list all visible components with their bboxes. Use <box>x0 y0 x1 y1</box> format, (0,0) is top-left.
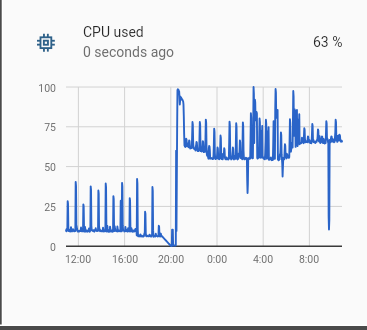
staticText: 20:00 <box>146 253 196 266</box>
staticText: 12:00 <box>53 253 103 266</box>
staticText: 25 <box>16 201 56 214</box>
staticText: 16:00 <box>100 253 150 266</box>
staticText: CPU used <box>83 24 144 40</box>
staticText: 63 % <box>313 34 343 50</box>
staticText: 4:00 <box>238 253 288 266</box>
staticText: 100 <box>16 82 56 95</box>
staticText: 0 <box>16 241 56 254</box>
staticText: 75 <box>16 121 56 134</box>
staticText: 50 <box>16 161 56 174</box>
button[interactable]: CPU <box>36 33 56 53</box>
staticText: 0:00 <box>192 253 242 266</box>
staticText: 0 seconds ago <box>83 44 175 60</box>
staticText: 8:00 <box>284 253 334 266</box>
